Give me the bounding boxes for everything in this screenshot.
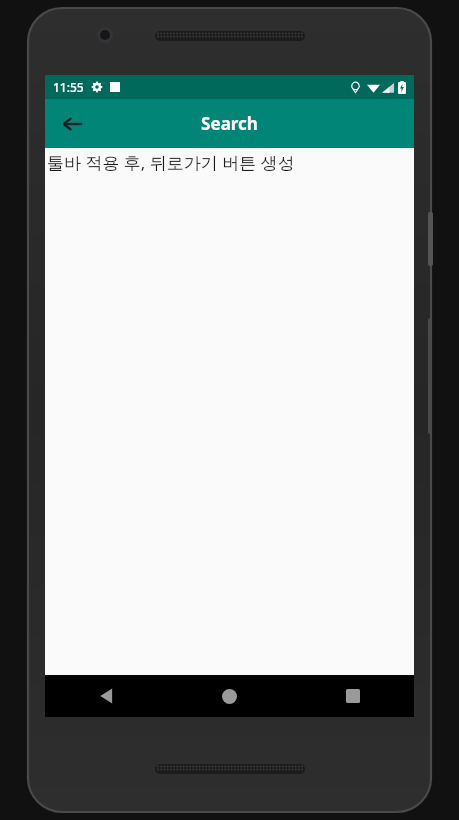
button[interactable]: Back [53, 104, 93, 144]
staticText: 11:55 [53, 79, 84, 95]
button[interactable]: Home [168, 675, 291, 717]
staticText: 툴바 적용 후, 뒤로가기 버튼 생성 [47, 151, 295, 174]
staticText: Search [201, 112, 258, 135]
button[interactable]: Back [45, 675, 168, 717]
button[interactable]: Recent apps [291, 675, 414, 717]
